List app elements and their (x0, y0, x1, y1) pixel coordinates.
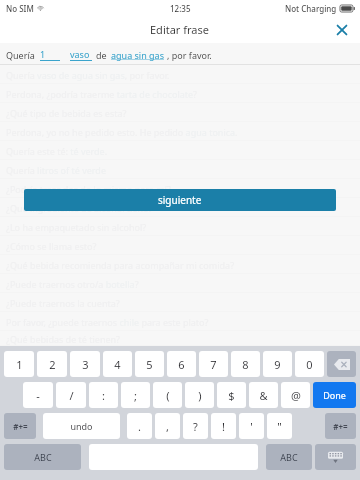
button[interactable]: 6 (167, 351, 196, 377)
button[interactable]: ABC (266, 444, 312, 470)
button[interactable]: Cerrar (330, 18, 354, 42)
button[interactable]: - (23, 382, 53, 408)
button[interactable]: 5 (135, 351, 164, 377)
staticText: $ (228, 388, 235, 403)
staticText: 6 (178, 357, 185, 372)
staticText: , (166, 419, 169, 434)
button[interactable]: / (56, 382, 86, 408)
staticText: de (96, 49, 107, 61)
staticText: ¿Podría traer dos de lo mismo para mí? (6, 183, 171, 195)
button[interactable]: : (89, 382, 118, 408)
staticText: " (277, 419, 282, 434)
staticText: ' (250, 419, 253, 434)
staticText: ( (166, 388, 170, 403)
button[interactable]: " (267, 413, 292, 439)
button[interactable]: #+= (4, 413, 36, 439)
button[interactable]: ( (153, 382, 182, 408)
staticText: ) (198, 388, 202, 403)
button[interactable]: Ocultar teclado (315, 444, 356, 470)
button[interactable]: ¿Qué ingrediente de alcohol tiene? (0, 198, 360, 217)
staticText: 3 (82, 357, 89, 372)
button[interactable]: ? (183, 413, 208, 439)
staticText: agua sin gas (111, 49, 164, 61)
button[interactable]: 4 (103, 351, 132, 377)
staticText: ABC (280, 451, 298, 463)
button[interactable]: undo (43, 413, 120, 439)
staticText: ; (134, 388, 137, 403)
staticText: 8 (242, 357, 249, 372)
staticText: #+= (333, 421, 348, 432)
staticText: / (69, 388, 74, 403)
staticText: . (138, 419, 141, 434)
button[interactable]: 8 (231, 351, 260, 377)
staticText: vaso (70, 48, 90, 60)
button[interactable]: @ (281, 382, 310, 408)
staticText: , por favor. (167, 49, 212, 61)
button[interactable]: 1 (40, 48, 60, 61)
button[interactable]: #+= (325, 413, 356, 439)
button[interactable]: ) (185, 382, 214, 408)
staticText: : (102, 388, 105, 403)
button[interactable]: . (127, 413, 152, 439)
staticText: 1 (16, 357, 23, 372)
button[interactable]: 3 (70, 351, 100, 377)
staticText: Quería (6, 49, 35, 61)
button[interactable]: agua sin gas (111, 49, 164, 61)
staticText: 12:35 (170, 3, 191, 14)
staticText: 1 (40, 48, 46, 60)
staticText: ! (222, 419, 225, 434)
button[interactable]: ' (239, 413, 264, 439)
button[interactable]: & (249, 382, 278, 408)
staticText: Not Charging (285, 3, 337, 14)
staticText: ? (193, 419, 198, 434)
staticText: undo (70, 420, 93, 432)
button[interactable]: siguiente (24, 189, 336, 211)
button[interactable]: , (155, 413, 180, 439)
staticText: Done (323, 389, 346, 401)
button[interactable]: ¿Podría traer dos de lo mismo para mí? (0, 179, 360, 198)
button[interactable]: 9 (263, 351, 292, 377)
button[interactable]: vaso (70, 48, 92, 61)
button[interactable]: Borrar (327, 351, 356, 377)
button[interactable]: 1 (4, 351, 34, 377)
staticText: 2 (49, 357, 56, 372)
button[interactable]: 2 (37, 351, 67, 377)
staticText: 9 (274, 357, 281, 372)
button[interactable]: ; (121, 382, 150, 408)
button[interactable]: Done (313, 382, 356, 408)
staticText: #+= (13, 421, 28, 432)
staticText: ABC (34, 451, 52, 463)
button[interactable]: ! (211, 413, 236, 439)
button[interactable]: $ (217, 382, 246, 408)
button[interactable]: 7 (199, 351, 228, 377)
staticText: siguiente (158, 193, 202, 207)
staticText: - (36, 388, 40, 403)
button[interactable]: 0 (295, 351, 324, 377)
button[interactable]: ABC (4, 444, 81, 470)
